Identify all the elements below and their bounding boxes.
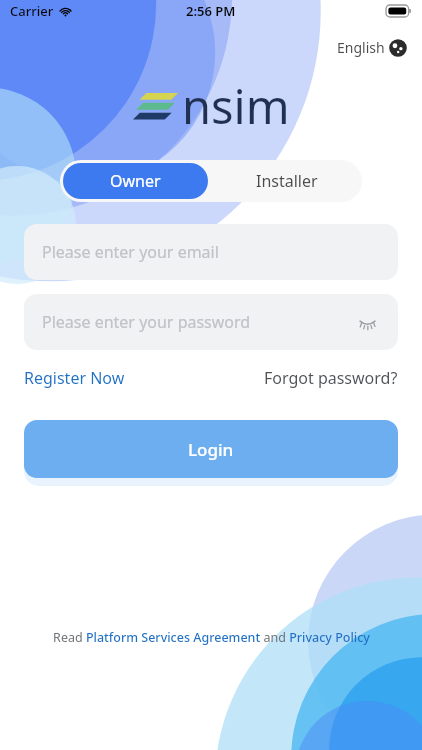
staticText: Register Now [24, 367, 125, 389]
staticText: Read Platform Services Agreement and Pri… [53, 629, 370, 646]
button[interactable]: Installer [211, 160, 362, 202]
button[interactable]: Register Now [24, 362, 125, 394]
button[interactable]: Login [24, 420, 398, 478]
button[interactable]: Owner [63, 163, 208, 199]
staticText: Forgot password? [264, 367, 398, 389]
staticText: English [337, 38, 385, 57]
button[interactable]: Read Platform Services Agreement and Pri… [45, 625, 378, 650]
button[interactable]: Show password [354, 309, 380, 335]
other: Change language [390, 40, 406, 56]
staticText: Installer [256, 170, 318, 192]
button[interactable]: English [333, 35, 410, 60]
staticText: Carrier [10, 2, 54, 20]
staticText: 2:56 PM [186, 2, 236, 20]
staticText: Please enter your password [42, 311, 251, 333]
staticText: nsim [182, 74, 290, 138]
button[interactable]: Please enter your email [24, 224, 398, 280]
staticText: Owner [110, 170, 161, 192]
other: ensim logo [133, 83, 179, 129]
staticText: Login [188, 438, 234, 461]
staticText: Please enter your email [42, 241, 219, 263]
button[interactable]: Forgot password? [264, 362, 398, 394]
button[interactable]: Please enter your password [24, 294, 398, 350]
